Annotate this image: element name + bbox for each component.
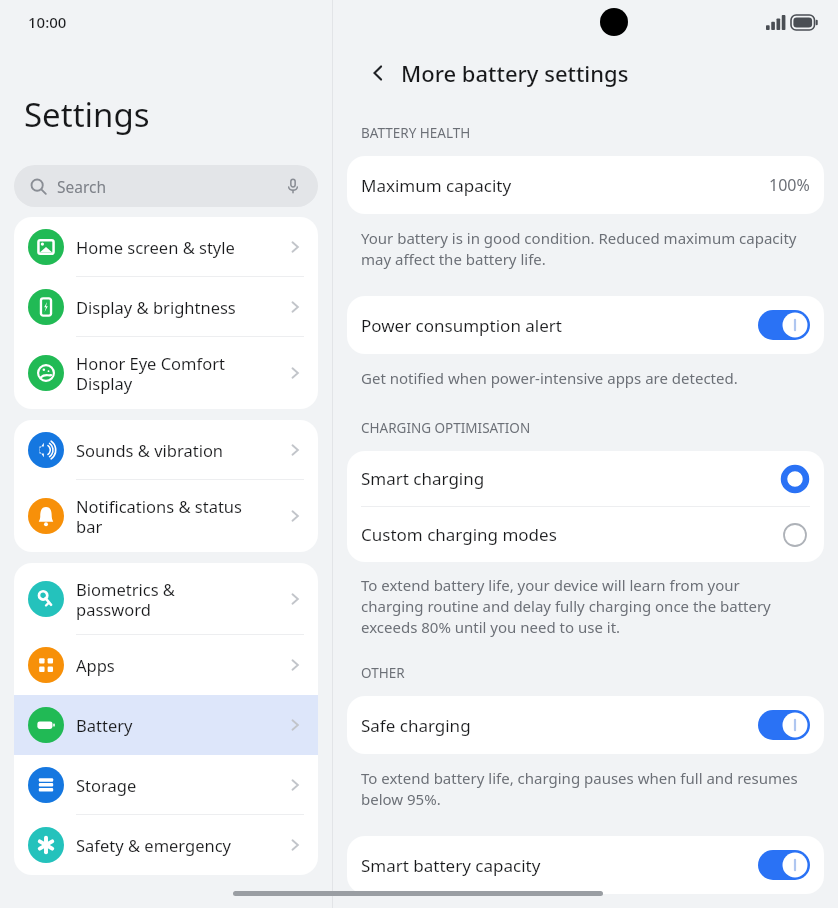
button[interactable]: Toggle [758,850,810,880]
staticText: 100% [769,174,810,196]
staticText: 10:00 [28,12,67,32]
staticText: OTHER [361,664,405,682]
button[interactable]: Smart charging [347,451,824,506]
button[interactable]: Sounds & vibration [14,420,318,480]
staticText: To extend battery life, your device will… [361,575,804,638]
button[interactable]: Storage [14,755,318,815]
button[interactable]: Battery [14,695,318,755]
button[interactable]: Maximum capacity [347,156,824,214]
staticText: More battery settings [401,58,629,88]
button[interactable]: Selected option [780,464,810,494]
button[interactable]: Option [780,520,810,550]
button[interactable]: Notifications & status bar [14,480,318,552]
staticText: Maximum capacity [361,174,769,197]
button[interactable]: Search [14,165,318,207]
staticText: Settings [24,92,150,137]
button[interactable]: Apps [14,635,318,695]
staticText: To extend battery life, charging pauses … [361,768,804,810]
button[interactable]: Toggle [758,710,810,740]
staticText: Biometrics & password [76,578,280,621]
staticText: Safety & emergency [76,834,280,856]
staticText: BATTERY HEALTH [361,124,471,142]
button[interactable]: Home screen & style [14,217,318,277]
staticText: Apps [76,654,280,676]
staticText: Sounds & vibration [76,439,280,461]
staticText: Safe charging [361,714,758,737]
staticText: Smart battery capacity [361,854,758,877]
staticText: Home screen & style [76,236,280,258]
staticText: Search [57,176,284,197]
button[interactable]: Display & brightness [14,277,318,337]
button[interactable]: Back [361,56,395,90]
staticText: Power consumption alert [361,314,758,337]
staticText: Storage [76,774,280,796]
staticText: Display & brightness [76,296,280,318]
staticText: Honor Eye Comfort Display [76,352,280,395]
staticText: Custom charging modes [361,523,780,546]
staticText: Smart charging [361,467,780,490]
staticText: Notifications & status bar [76,495,280,538]
button[interactable]: Safety & emergency [14,815,318,875]
button[interactable]: Honor Eye Comfort Display [14,337,318,409]
button[interactable]: Custom charging modes [347,507,824,562]
button[interactable]: Toggle [758,310,810,340]
staticText: Get notified when power-intensive apps a… [361,368,738,388]
button[interactable]: Biometrics & password [14,563,318,635]
button[interactable]: Safe charging [347,696,824,754]
button[interactable]: Smart battery capacity [347,836,824,894]
staticText: Your battery is in good condition. Reduc… [361,228,804,270]
button[interactable]: Power consumption alert [347,296,824,354]
staticText: Battery [76,714,280,736]
staticText: CHARGING OPTIMISATION [361,419,531,437]
